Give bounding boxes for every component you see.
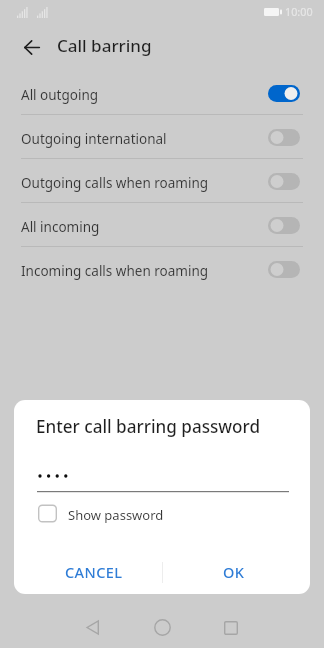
- staticText: Outgoing calls when roaming: [21, 174, 268, 192]
- button[interactable]: Recent apps: [208, 605, 253, 648]
- button[interactable]: Home: [140, 605, 185, 648]
- staticText: Show password: [68, 506, 164, 524]
- staticText: Enter call barring password: [36, 415, 261, 438]
- staticText: CANCEL: [65, 562, 123, 582]
- staticText: Call barring: [57, 34, 152, 57]
- button[interactable]: Back: [70, 605, 115, 648]
- staticText: Outgoing international: [21, 130, 268, 148]
- button[interactable]: Back: [16, 31, 48, 63]
- button[interactable]: All incoming: [0, 203, 324, 247]
- button[interactable]: Outgoing international: [0, 115, 324, 159]
- staticText: 10:00: [285, 4, 313, 19]
- staticText: OK: [223, 562, 245, 582]
- staticText: All outgoing: [21, 86, 268, 104]
- button[interactable]: All outgoing: [0, 71, 324, 115]
- button[interactable]: Incoming calls when roaming: [0, 247, 324, 291]
- staticText: Incoming calls when roaming: [21, 262, 268, 280]
- button[interactable]: Outgoing calls when roaming: [0, 159, 324, 203]
- button[interactable]: CANCEL: [63, 552, 125, 592]
- button[interactable]: OK: [204, 552, 264, 592]
- button[interactable]: Show password: [37, 504, 164, 523]
- staticText: All incoming: [21, 218, 268, 236]
